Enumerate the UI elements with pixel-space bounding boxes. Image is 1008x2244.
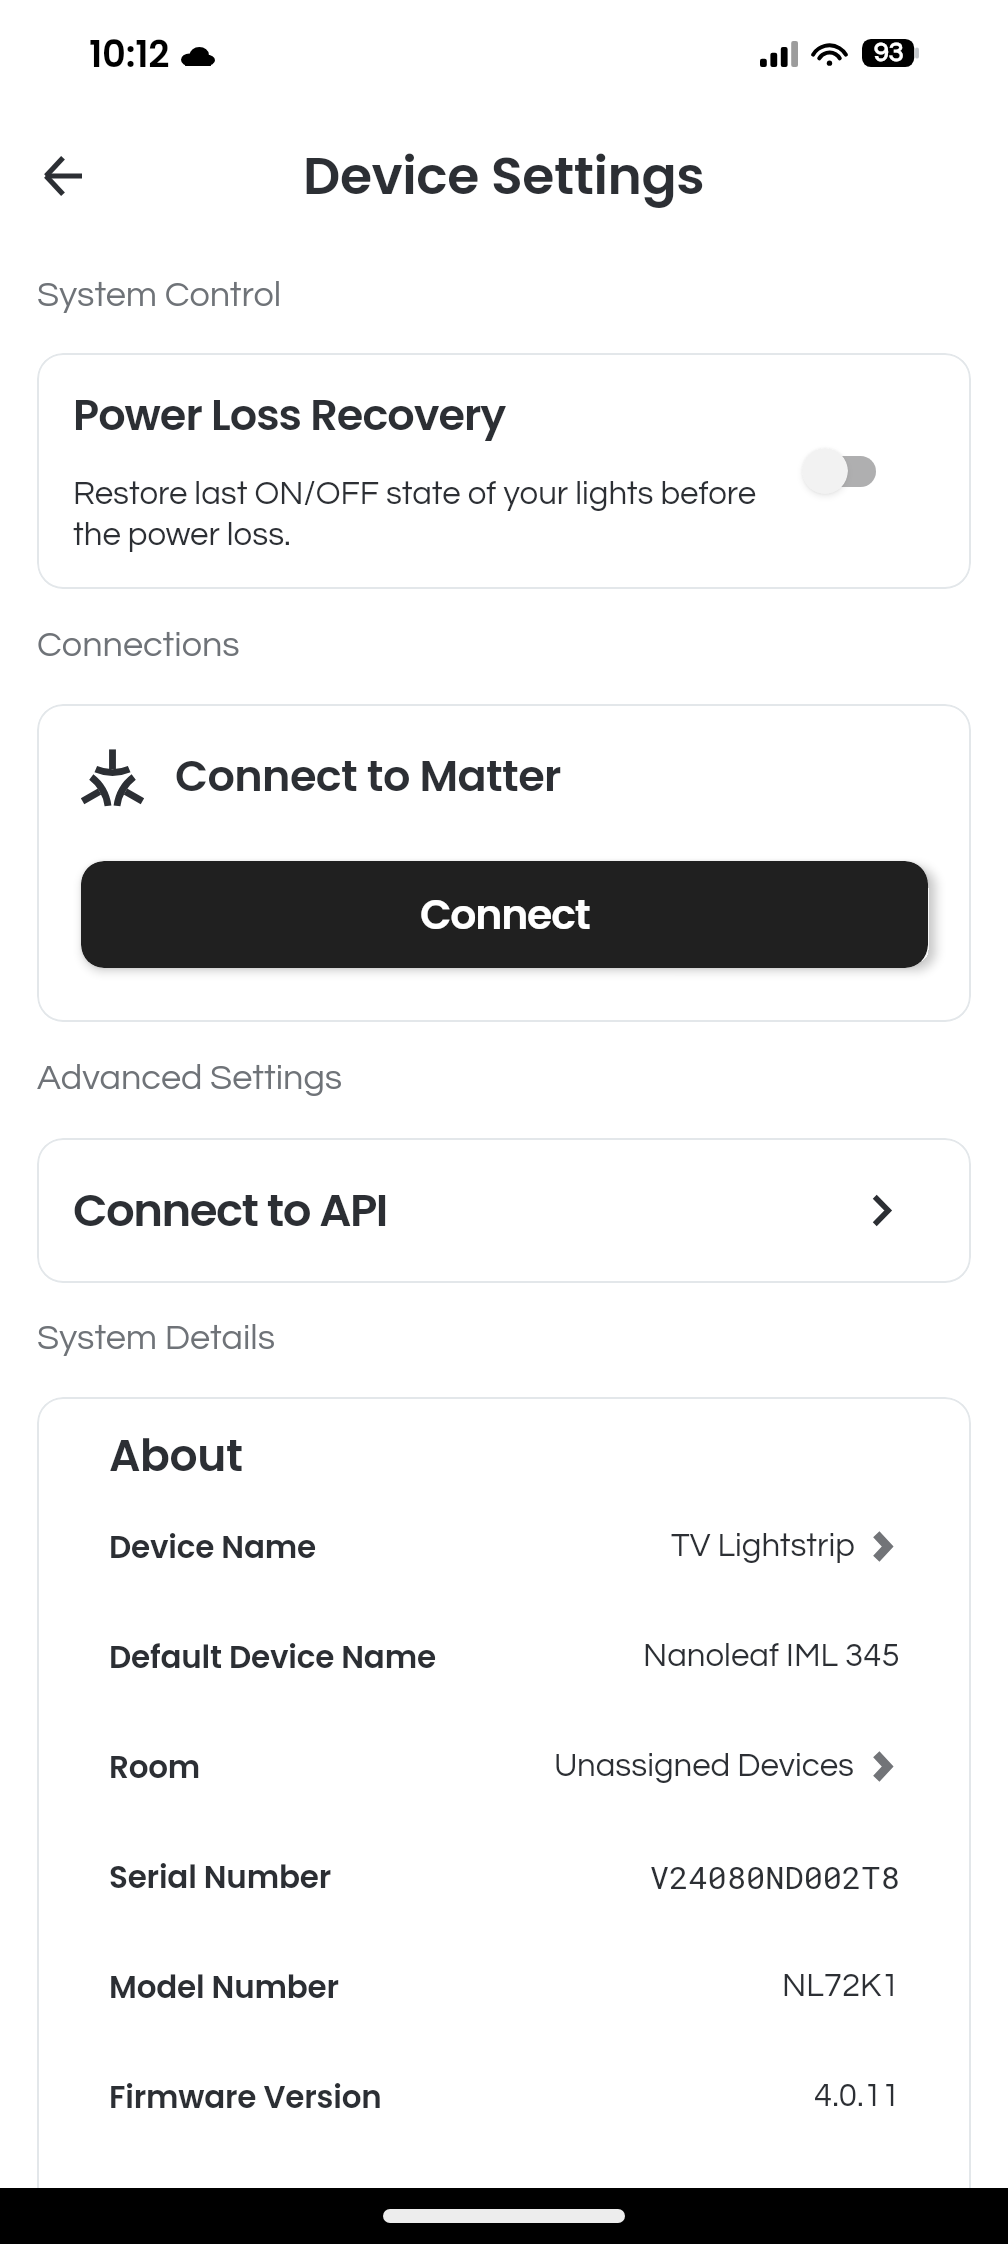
staticText: Power Loss Recovery — [73, 385, 506, 445]
staticText: Model Number — [109, 1965, 339, 2008]
staticText: Connect — [420, 886, 590, 943]
staticText: 10:12 — [89, 28, 170, 80]
staticText: TV Lightstrip — [671, 1529, 855, 1563]
button[interactable]: Back — [24, 137, 102, 215]
staticText: Connect to API — [73, 1179, 387, 1242]
staticText: 4.0.11 — [814, 2079, 900, 2113]
staticText: Connect to Matter — [175, 746, 561, 806]
staticText: Room — [109, 1745, 201, 1788]
staticText: Firmware Version — [109, 2075, 382, 2118]
staticText: Default Device Name — [109, 1635, 436, 1678]
button[interactable]: Room — [37, 1711, 971, 1821]
button[interactable]: Power Loss Recovery toggle — [802, 443, 876, 499]
staticText: System Details — [37, 1319, 275, 1356]
button[interactable]: Device Name — [37, 1491, 971, 1601]
staticText: Device Settings — [303, 139, 705, 212]
button[interactable]: Connect — [81, 861, 928, 968]
staticText: About — [109, 1425, 243, 1487]
staticText: Serial Number — [109, 1855, 331, 1898]
staticText: Device Name — [109, 1525, 316, 1568]
button[interactable]: Model Number — [37, 1931, 971, 2041]
staticText: Unassigned Devices — [554, 1749, 855, 1783]
button[interactable]: Connect to API — [37, 1138, 971, 1283]
button[interactable]: Firmware Version — [37, 2041, 971, 2151]
button[interactable]: Serial Number — [37, 1821, 971, 1931]
staticText: Restore last ON/OFF state of your lights… — [73, 477, 757, 552]
staticText: V24080ND002T8 — [650, 1855, 900, 1897]
button[interactable]: Default Device Name — [37, 1601, 971, 1711]
staticText: Nanoleaf IML 345 — [643, 1639, 900, 1673]
staticText: NL72K1 — [782, 1969, 900, 2003]
staticText: Connections — [37, 626, 240, 663]
staticText: Advanced Settings — [37, 1059, 343, 1096]
staticText: 93 — [874, 39, 904, 67]
staticText: System Control — [37, 276, 282, 313]
